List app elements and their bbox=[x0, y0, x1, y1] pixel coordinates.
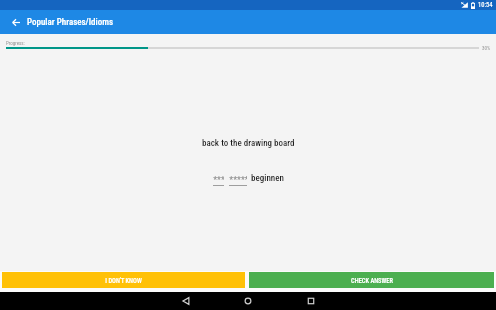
button[interactable]: Recents bbox=[302, 292, 320, 310]
staticText: 10:54 bbox=[478, 1, 493, 9]
staticText: CHECK ANSWER bbox=[351, 277, 393, 285]
button[interactable]: CHECK ANSWER bbox=[249, 272, 494, 288]
button[interactable]: Back bbox=[177, 292, 195, 310]
staticText: *** bbox=[213, 175, 224, 186]
button[interactable]: Home bbox=[239, 292, 257, 310]
staticText: beginnen bbox=[251, 173, 284, 184]
staticText: back to the drawing board bbox=[202, 138, 295, 149]
staticText: Progress: bbox=[6, 40, 25, 46]
button[interactable]: I DON'T KNOW bbox=[2, 272, 245, 288]
staticText: I DON'T KNOW bbox=[105, 277, 142, 285]
button[interactable]: Back bbox=[8, 10, 24, 34]
staticText: ***** bbox=[229, 175, 247, 186]
staticText: 30% bbox=[482, 45, 491, 51]
staticText: Popular Phrases/Idioms bbox=[27, 17, 114, 28]
